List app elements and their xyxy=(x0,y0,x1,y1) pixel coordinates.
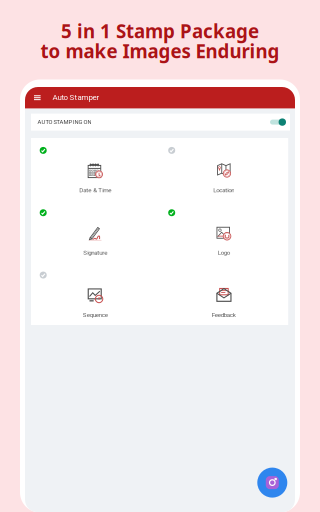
button[interactable]: Logo xyxy=(160,200,288,263)
button[interactable]: Location xyxy=(160,138,288,200)
staticText: 5 in 1 Stamp Package xyxy=(61,19,259,43)
button[interactable]: Camera xyxy=(257,468,287,498)
staticText: AUTO STAMPING ON xyxy=(37,119,91,125)
staticText: Location xyxy=(213,187,234,194)
staticText: Sequence xyxy=(83,311,108,318)
button[interactable]: Sequence xyxy=(31,263,160,325)
button[interactable]: Auto stamping toggle xyxy=(270,118,285,127)
staticText: Feedback xyxy=(212,311,236,318)
button[interactable]: Feedback xyxy=(160,263,288,325)
button[interactable]: Signature xyxy=(31,200,160,263)
button[interactable]: Date & Time xyxy=(31,138,160,200)
staticText: to make Images Enduring xyxy=(40,39,279,63)
staticText: Logo xyxy=(218,249,230,256)
staticText: Date & Time xyxy=(79,187,111,194)
staticText: Signature xyxy=(83,249,107,256)
staticText: Auto Stamper xyxy=(52,93,99,102)
button[interactable]: Menu xyxy=(29,90,46,105)
